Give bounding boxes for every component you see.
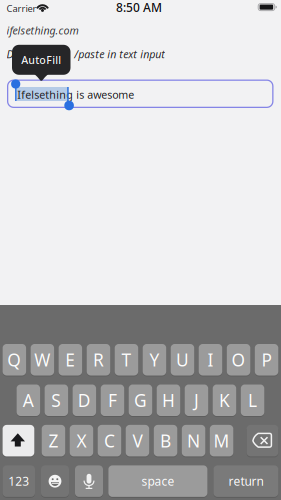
staticText: A (23, 389, 34, 412)
staticText: L (248, 389, 257, 412)
button[interactable]: B (154, 425, 177, 456)
button[interactable]: return (213, 465, 278, 497)
staticText: F (108, 389, 117, 412)
button[interactable]: V (126, 425, 149, 456)
button[interactable]: Z (42, 425, 65, 456)
staticText: return (228, 473, 263, 489)
button[interactable]: A (17, 384, 40, 416)
button[interactable]: O (227, 344, 250, 375)
button[interactable]: Shift (3, 425, 34, 456)
button[interactable]: U (171, 344, 194, 375)
staticText: space (141, 473, 174, 489)
button[interactable]: T (115, 344, 138, 375)
button[interactable]: Y (143, 344, 166, 375)
button[interactable]: E (59, 344, 82, 375)
staticText: Q (7, 348, 21, 371)
staticText: Disable copy (6, 47, 66, 61)
staticText: E (65, 348, 75, 371)
button[interactable]: H (157, 384, 180, 416)
staticText: /paste in text input (74, 47, 165, 61)
staticText: I (207, 348, 213, 371)
staticText: V (132, 429, 142, 452)
staticText: W (34, 348, 50, 371)
button[interactable]: P (255, 344, 278, 375)
staticText: C (104, 429, 115, 452)
button[interactable]: Q (3, 344, 26, 375)
staticText: D (78, 389, 91, 412)
button[interactable]: I (199, 344, 222, 375)
button[interactable]: Dictation (75, 465, 103, 497)
button[interactable]: J (185, 384, 208, 416)
staticText: AutoFill (21, 53, 61, 67)
staticText: H (162, 389, 175, 412)
staticText: U (176, 348, 189, 371)
staticText: Ifelsething is awesome (17, 88, 134, 102)
button[interactable]: S (45, 384, 68, 416)
staticText: G (134, 389, 147, 412)
staticText: M (214, 429, 230, 452)
staticText: P (262, 348, 272, 371)
button[interactable]: Numbers (3, 465, 35, 497)
button[interactable]: AutoFill (12, 45, 70, 75)
staticText: 123 (8, 473, 29, 489)
staticText: K (219, 389, 230, 412)
staticText: B (160, 429, 171, 452)
staticText: J (194, 389, 199, 412)
button[interactable]: N (182, 425, 205, 456)
staticText: X (76, 429, 86, 452)
button[interactable]: X (70, 425, 93, 456)
staticText: O (232, 348, 246, 371)
button[interactable]: Delete (247, 425, 278, 456)
staticText: N (187, 429, 200, 452)
staticText: ifelsething.com (6, 23, 78, 38)
staticText: R (93, 348, 104, 371)
staticText: Y (149, 348, 159, 371)
staticText: Z (48, 429, 58, 452)
button[interactable]: Emoji (41, 465, 69, 497)
button[interactable]: Text input (7, 79, 273, 108)
staticText: T (121, 348, 131, 371)
button[interactable]: space (108, 465, 207, 497)
staticText: Carrier (6, 2, 36, 15)
button[interactable]: F (101, 384, 124, 416)
button[interactable]: D (73, 384, 96, 416)
button[interactable]: W (31, 344, 54, 375)
button[interactable]: M (210, 425, 233, 456)
button[interactable]: K (213, 384, 236, 416)
button[interactable]: L (241, 384, 264, 416)
button[interactable]: G (129, 384, 152, 416)
staticText: 8:50 AM (116, 0, 162, 15)
staticText: S (51, 389, 61, 412)
button[interactable]: R (87, 344, 110, 375)
button[interactable]: C (98, 425, 121, 456)
